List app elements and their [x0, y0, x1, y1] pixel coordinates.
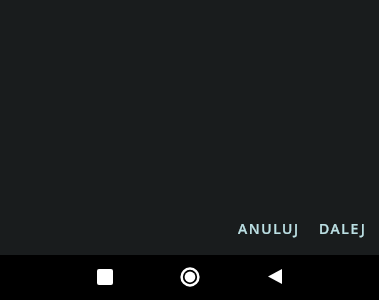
- button[interactable]: Back: [248, 255, 302, 300]
- button[interactable]: Home: [163, 255, 217, 300]
- button[interactable]: Recent apps: [78, 255, 132, 300]
- staticText: DALEJ: [319, 219, 367, 238]
- button[interactable]: DALEJ: [309, 212, 377, 245]
- staticText: ANULUJ: [238, 219, 300, 238]
- button[interactable]: ANULUJ: [228, 212, 310, 245]
